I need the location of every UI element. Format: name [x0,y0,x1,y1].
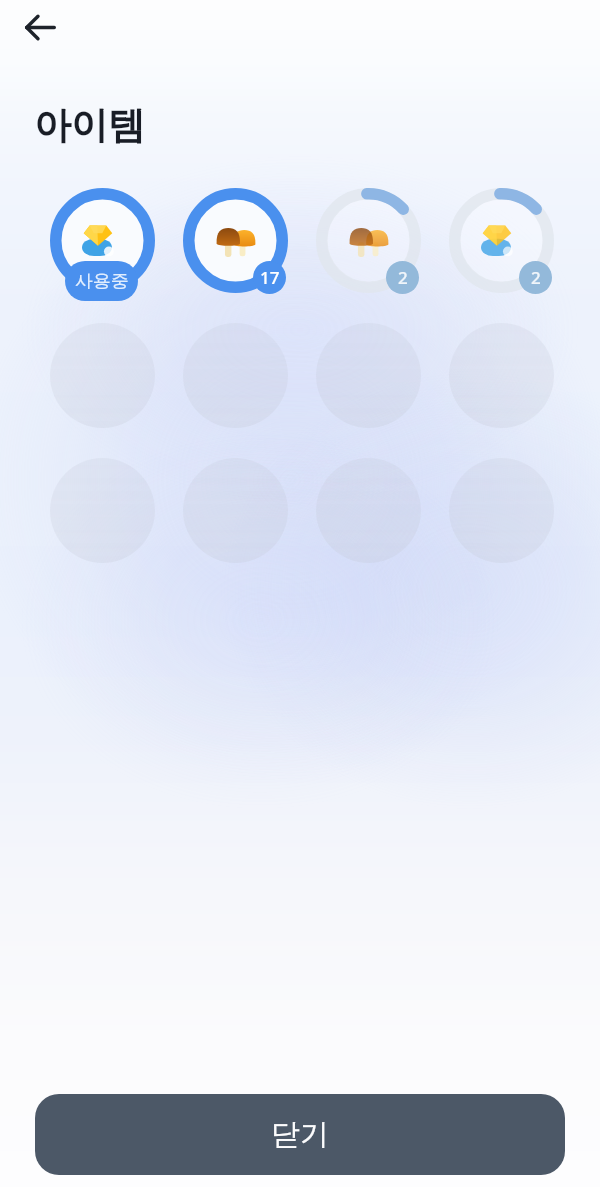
button[interactable]: 사용중 [65,261,138,301]
button[interactable]: Item 5 [50,323,155,428]
staticText: 아이템 [34,102,145,149]
button[interactable]: Item 9 [50,458,155,563]
button[interactable]: Item 2 [183,188,288,293]
button[interactable]: Item 3 [316,188,421,293]
staticText: 사용중 [75,270,129,293]
button[interactable]: Item 7 [316,323,421,428]
button[interactable]: Item 8 [449,323,554,428]
button[interactable]: 닫기 [35,1094,565,1175]
button[interactable]: Back [14,1,66,53]
button[interactable]: Item 1 [50,188,155,293]
staticText: 2 [531,266,541,289]
button[interactable]: Item 10 [183,458,288,563]
staticText: 2 [398,266,408,289]
button[interactable]: Item 12 [449,458,554,563]
button[interactable]: Item 11 [316,458,421,563]
staticText: 닫기 [271,1116,329,1153]
button[interactable]: Item 4 [449,188,554,293]
button[interactable]: Item 6 [183,323,288,428]
staticText: 17 [260,266,280,289]
